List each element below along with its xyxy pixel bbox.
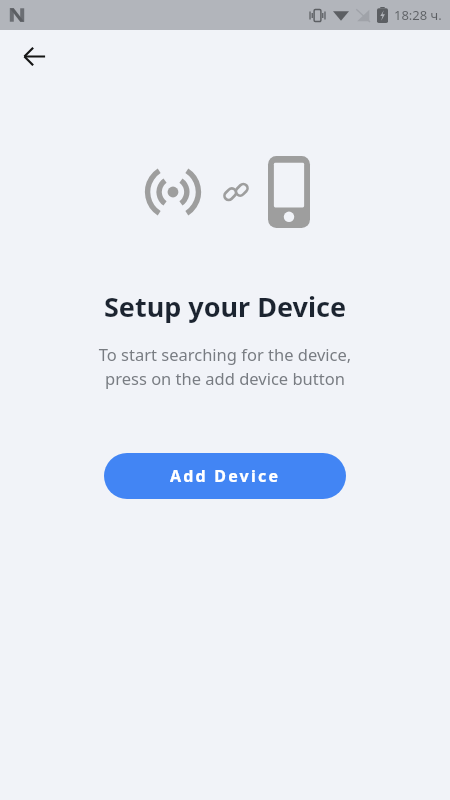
staticText: Setup your Device bbox=[0, 288, 450, 325]
button[interactable]: Back bbox=[10, 32, 58, 80]
staticText: 18:28 ч. bbox=[394, 6, 442, 24]
staticText: To start searching for the device, press… bbox=[0, 343, 450, 390]
staticText: Add Device bbox=[170, 465, 281, 487]
button[interactable]: Add Device bbox=[104, 453, 346, 499]
